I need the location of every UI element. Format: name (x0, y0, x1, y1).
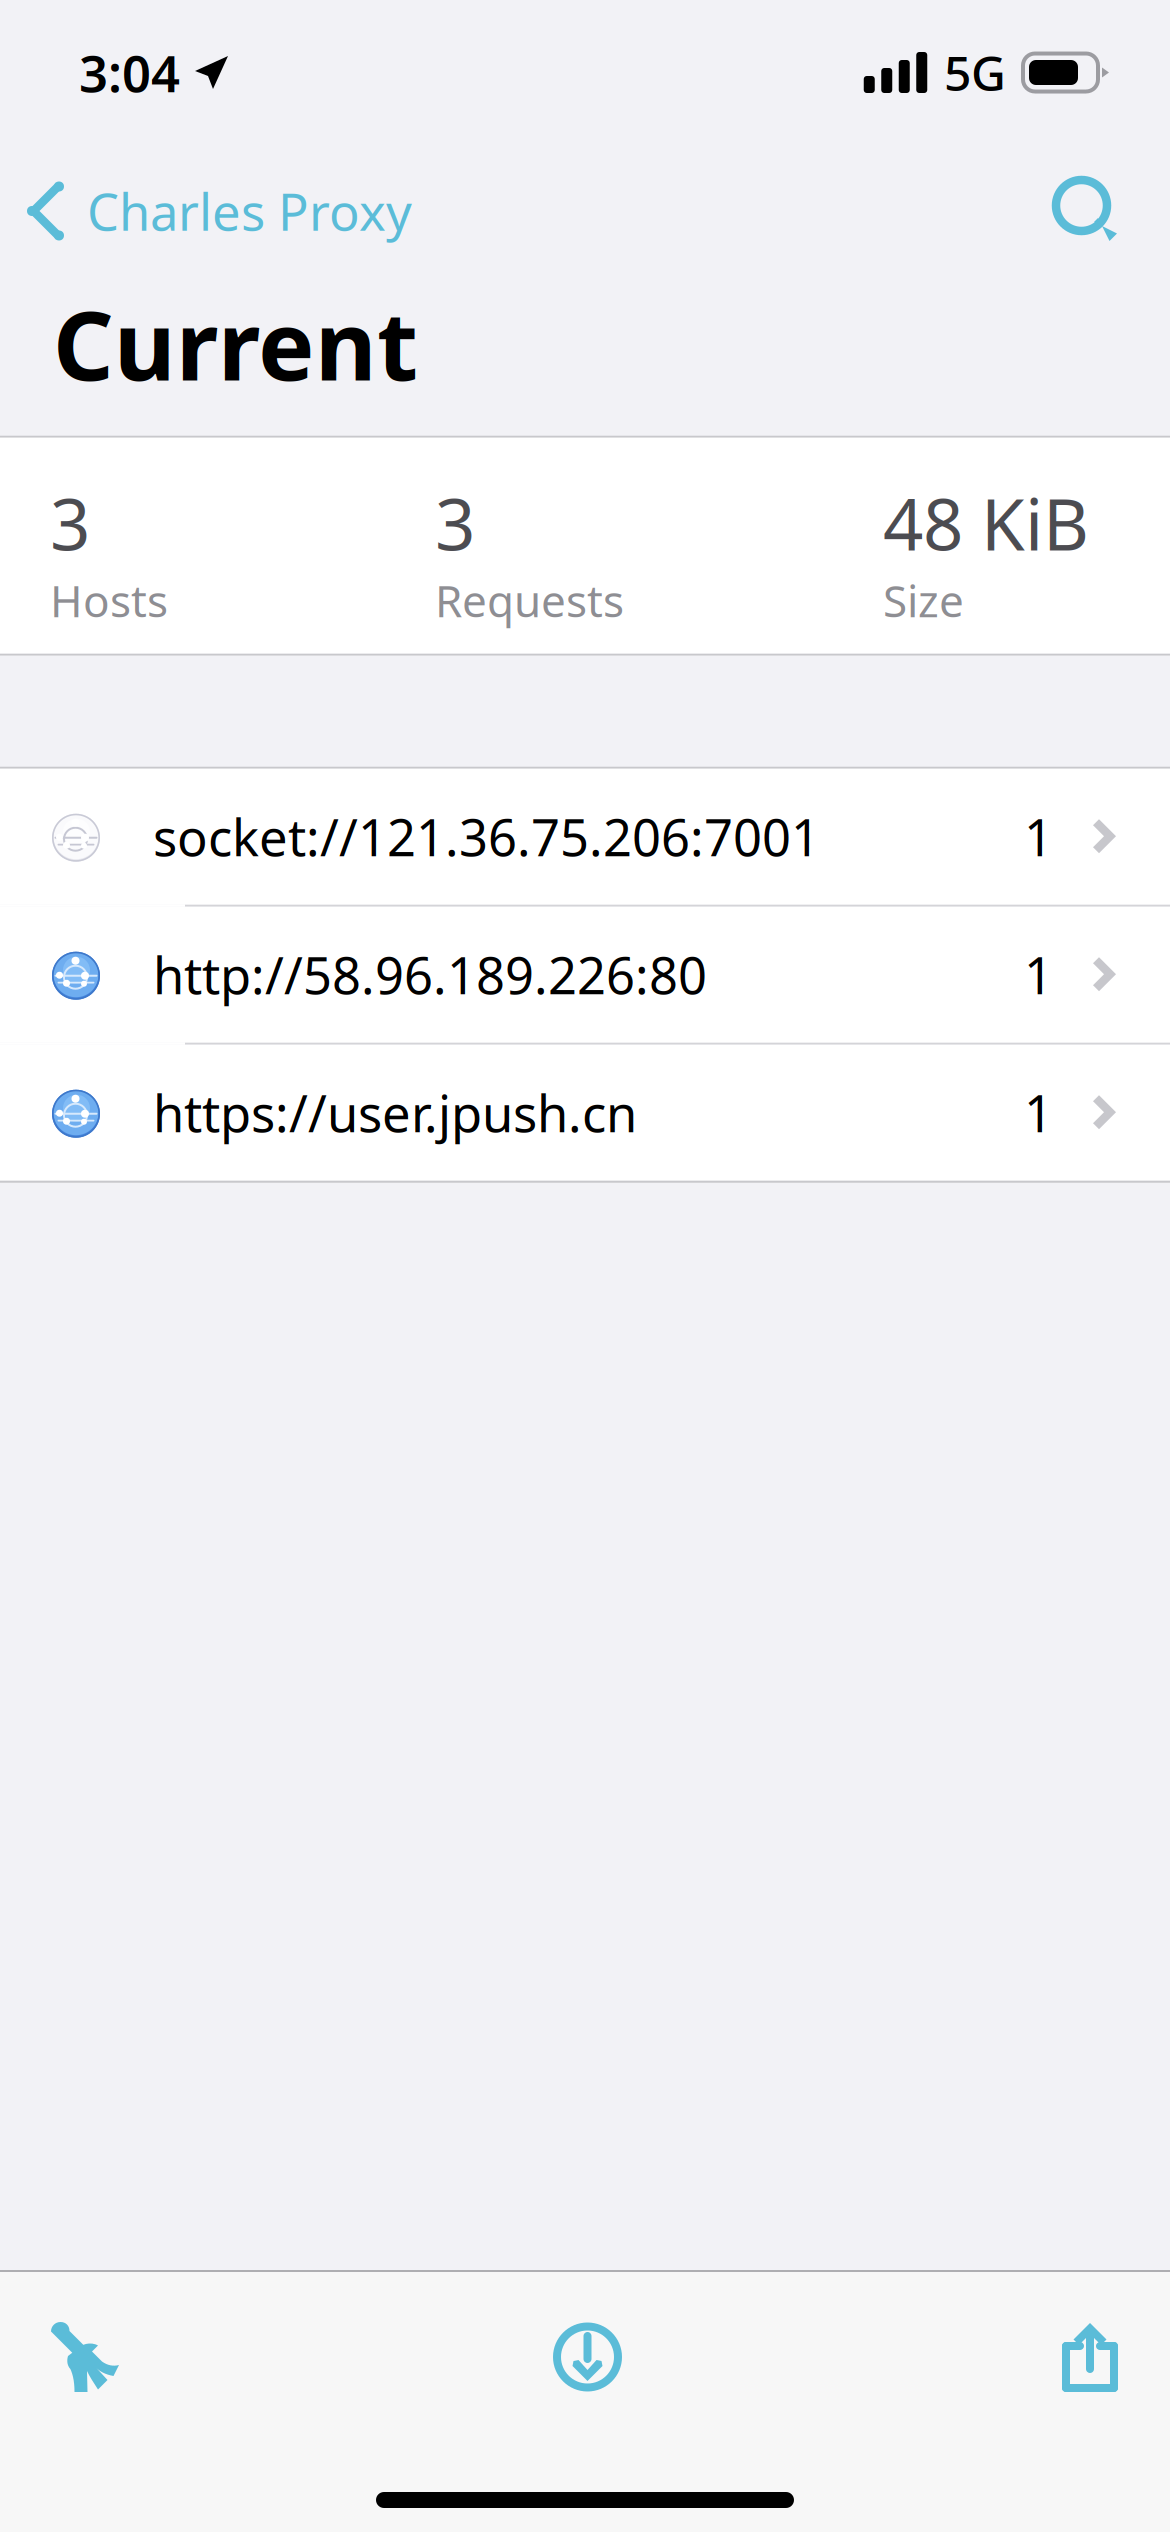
button[interactable]: Search (1021, 145, 1170, 277)
button[interactable]: http://58.96.189.226:80 (0, 907, 1170, 1043)
staticText: Hosts (50, 571, 168, 629)
staticText: http://58.96.189.226:80 (153, 941, 707, 1008)
staticText: 1 (1024, 803, 1053, 870)
button[interactable]: https://user.jpush.cn (0, 1045, 1170, 1181)
button[interactable]: socket://121.36.75.206:7001 (0, 769, 1170, 905)
staticText: https://user.jpush.cn (153, 1079, 637, 1146)
staticText: Current (53, 281, 418, 407)
button[interactable]: Record (507, 2284, 667, 2430)
staticText: 3 (50, 476, 90, 570)
staticText: 1 (1024, 941, 1053, 1008)
staticText: 3:04 (79, 39, 180, 106)
button[interactable]: Clear session (5, 2284, 165, 2430)
staticText: Requests (435, 571, 624, 629)
staticText: Size (883, 571, 964, 629)
staticText: 1 (1024, 1079, 1053, 1146)
staticText: Charles Proxy (87, 177, 412, 245)
button[interactable]: Share (1010, 2284, 1170, 2430)
staticText: 48 KiB (883, 476, 1089, 570)
staticText: 3 (435, 476, 475, 570)
button[interactable]: Charles Proxy (0, 145, 442, 277)
staticText: socket://121.36.75.206:7001 (153, 803, 820, 870)
staticText: 5G (944, 41, 1006, 104)
